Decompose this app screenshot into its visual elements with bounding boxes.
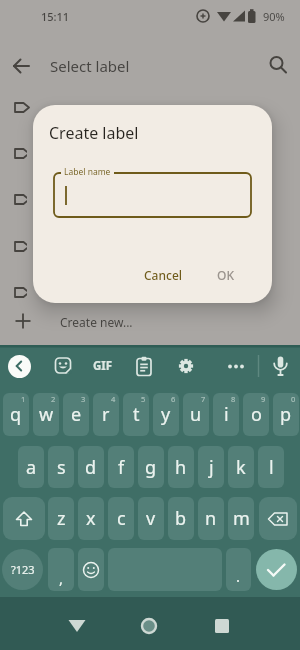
button[interactable]: n <box>198 497 224 540</box>
staticText: c <box>117 506 126 531</box>
button[interactable]: f <box>108 446 134 488</box>
button[interactable]: j <box>198 446 224 488</box>
staticText: ?123 <box>11 562 35 577</box>
staticText: . <box>236 566 241 586</box>
button[interactable] <box>205 607 239 641</box>
button[interactable] <box>270 355 291 378</box>
staticText: i <box>224 402 229 427</box>
staticText: a <box>26 455 37 480</box>
staticText: s <box>57 455 66 480</box>
button[interactable]: ?123 <box>2 549 43 590</box>
staticText: Select label <box>50 56 130 76</box>
button[interactable]: , <box>48 548 74 591</box>
button[interactable] <box>226 356 246 376</box>
staticText: Label name <box>64 166 111 178</box>
button[interactable]: r <box>93 393 119 436</box>
button[interactable]: Cancel <box>139 261 187 289</box>
staticText: 7 <box>201 394 206 404</box>
staticText: Cancel <box>144 267 183 283</box>
staticText: q <box>10 402 22 427</box>
staticText: 15:11 <box>41 9 70 24</box>
staticText: v <box>146 506 156 531</box>
button[interactable] <box>60 607 94 641</box>
button[interactable]: t <box>123 393 149 436</box>
staticText: 2 <box>51 394 56 404</box>
button[interactable] <box>8 52 36 80</box>
staticText: z <box>57 506 66 531</box>
staticText: , <box>59 568 64 588</box>
button[interactable]: p <box>273 393 299 436</box>
staticText: 5 <box>141 394 146 404</box>
button[interactable] <box>256 549 297 590</box>
staticText: k <box>236 455 246 480</box>
button[interactable] <box>132 607 166 641</box>
button[interactable]: b <box>168 497 194 540</box>
button[interactable]: k <box>228 446 254 488</box>
staticText: Create new... <box>60 314 133 330</box>
staticText: y <box>161 402 171 427</box>
button[interactable] <box>264 52 292 80</box>
staticText: 0 <box>291 394 296 404</box>
staticText: h <box>175 455 187 480</box>
button[interactable]: Create new... <box>0 302 300 342</box>
staticText: j <box>209 455 214 480</box>
staticText: g <box>145 455 157 480</box>
staticText: u <box>190 402 202 427</box>
staticText: 1 <box>21 394 26 404</box>
staticText: x <box>86 506 96 531</box>
staticText: t <box>133 402 140 427</box>
staticText: d <box>85 455 97 480</box>
button[interactable] <box>78 548 104 591</box>
button[interactable]: e <box>63 393 89 436</box>
button[interactable]: y <box>153 393 179 436</box>
button[interactable]: d <box>78 446 104 488</box>
staticText: p <box>280 402 292 427</box>
staticText: 6 <box>171 394 176 404</box>
staticText: 90% <box>263 9 285 24</box>
button[interactable] <box>176 356 196 376</box>
button[interactable]: i <box>213 393 239 436</box>
button[interactable]: w <box>33 393 59 436</box>
button[interactable]: x <box>78 497 104 540</box>
button[interactable] <box>3 497 45 540</box>
staticText: 9 <box>261 394 266 404</box>
staticText: b <box>175 506 187 531</box>
staticText: m <box>233 506 250 531</box>
button[interactable]: s <box>48 446 74 488</box>
staticText: r <box>102 402 110 427</box>
button[interactable]: OK <box>209 261 242 289</box>
button[interactable]: c <box>108 497 134 540</box>
staticText: GIF <box>93 358 113 374</box>
button[interactable]: l <box>258 446 284 488</box>
staticText: 4 <box>111 394 116 404</box>
button[interactable]: a <box>18 446 44 488</box>
staticText: w <box>39 402 54 427</box>
staticText: 8 <box>231 394 236 404</box>
button[interactable] <box>134 356 154 376</box>
button[interactable]: v <box>138 497 164 540</box>
button[interactable]: z <box>48 497 74 540</box>
button[interactable]: . <box>226 548 251 591</box>
button[interactable]: u <box>183 393 209 436</box>
staticText: o <box>251 402 262 427</box>
staticText: OK <box>217 267 234 283</box>
button[interactable] <box>8 355 31 378</box>
button[interactable]: GIF <box>90 357 116 375</box>
staticText: Create label <box>49 122 139 144</box>
button[interactable]: h <box>168 446 194 488</box>
staticText: e <box>71 402 82 427</box>
button[interactable] <box>54 356 74 376</box>
button[interactable] <box>259 497 297 540</box>
button[interactable]: o <box>243 393 269 436</box>
button[interactable]: g <box>138 446 164 488</box>
button[interactable]: m <box>228 497 254 540</box>
button[interactable]: q <box>3 393 29 436</box>
staticText: n <box>205 506 217 531</box>
staticText: f <box>118 455 125 480</box>
staticText: 3 <box>81 394 86 404</box>
staticText: l <box>269 455 274 480</box>
